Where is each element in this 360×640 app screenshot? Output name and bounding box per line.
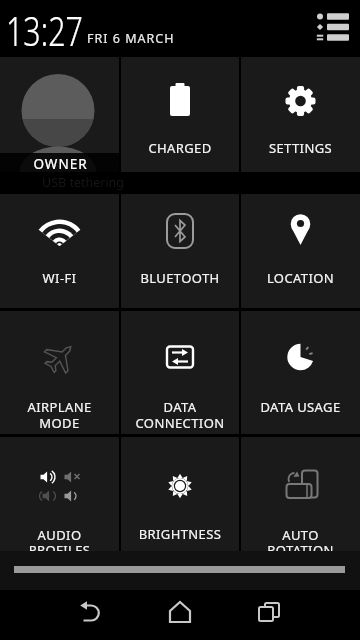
button[interactable] [160,593,200,633]
button[interactable]: DATA [121,311,239,434]
button[interactable]: SETTINGS [241,57,360,172]
staticText: LOCATION [241,269,360,287]
button[interactable]: BLUETOOTH [121,194,239,308]
staticText: CHARGED [121,139,239,157]
button[interactable] [0,57,119,172]
staticText: PROFILES [0,541,119,551]
staticText: AIRPLANE [0,398,119,416]
button[interactable] [250,593,290,633]
staticText: BLUETOOTH [121,269,239,287]
staticText: SETTINGS [241,139,360,157]
staticText: FRI 6 MARCH [87,30,175,47]
staticText: BRIGHTNESS [121,525,239,543]
staticText: 13:27 [6,2,83,57]
staticText: DATA [121,398,239,416]
staticText: DATA USAGE [241,398,360,416]
staticText: OWNER [0,155,121,173]
button[interactable] [310,8,352,46]
staticText: AUDIO [0,526,119,544]
staticText: CONNECTION [121,414,239,432]
staticText: AUTO [241,526,360,544]
staticText: WI-FI [0,269,119,287]
button[interactable]: WI-FI [0,194,119,308]
button[interactable]: AIRPLANE [0,311,119,434]
staticText: MODE [0,414,119,432]
button[interactable]: LOCATION [241,194,360,308]
button[interactable]: AUDIO [0,437,119,551]
staticText: USB tethering [42,174,125,191]
staticText: ROTATION [241,541,360,551]
button[interactable]: BRIGHTNESS [121,437,239,551]
button[interactable]: CHARGED [121,57,239,172]
button[interactable]: DATA USAGE [241,311,360,434]
button[interactable] [70,593,110,633]
button[interactable]: AUTO [241,437,360,551]
